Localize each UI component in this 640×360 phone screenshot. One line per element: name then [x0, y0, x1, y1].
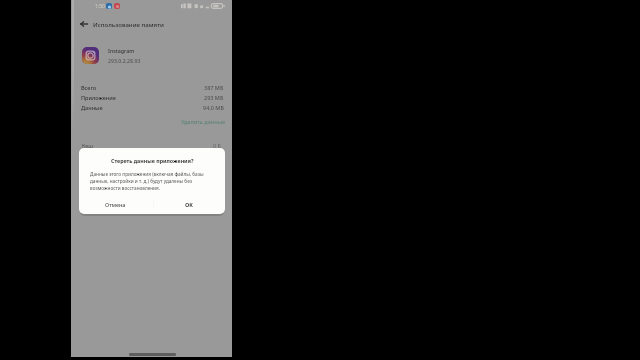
staticText: Instagram	[108, 47, 135, 54]
staticText: Отмена	[105, 201, 126, 208]
staticText: Всего	[81, 84, 97, 91]
staticText: 0 Б	[213, 142, 221, 149]
staticText: 94,0 МБ	[203, 104, 224, 111]
button[interactable]: Отмена	[95, 198, 135, 211]
staticText: Удалить данные	[181, 118, 226, 125]
staticText: Данные этого приложения (включая файлы, …	[90, 171, 214, 191]
staticText: Стереть данные приложения?	[111, 157, 194, 164]
staticText: 1:50	[95, 3, 105, 10]
button[interactable]: Всего	[81, 82, 224, 92]
staticText: OK	[185, 201, 193, 208]
button[interactable]: Данные	[81, 102, 224, 112]
button[interactable]: Приложение	[81, 92, 224, 102]
staticText: Приложение	[81, 94, 116, 101]
staticText: Использование памяти	[93, 20, 164, 28]
button[interactable]: OK	[174, 198, 204, 211]
button[interactable]: Удалить данные	[181, 118, 226, 125]
staticText: 387 МБ	[204, 84, 224, 91]
staticText: Данные	[81, 104, 103, 111]
staticText: 293.0.2.28.93	[108, 57, 141, 64]
staticText: Кеш	[82, 142, 94, 149]
staticText: 293 МБ	[204, 94, 224, 101]
button[interactable]: Back	[76, 16, 91, 31]
